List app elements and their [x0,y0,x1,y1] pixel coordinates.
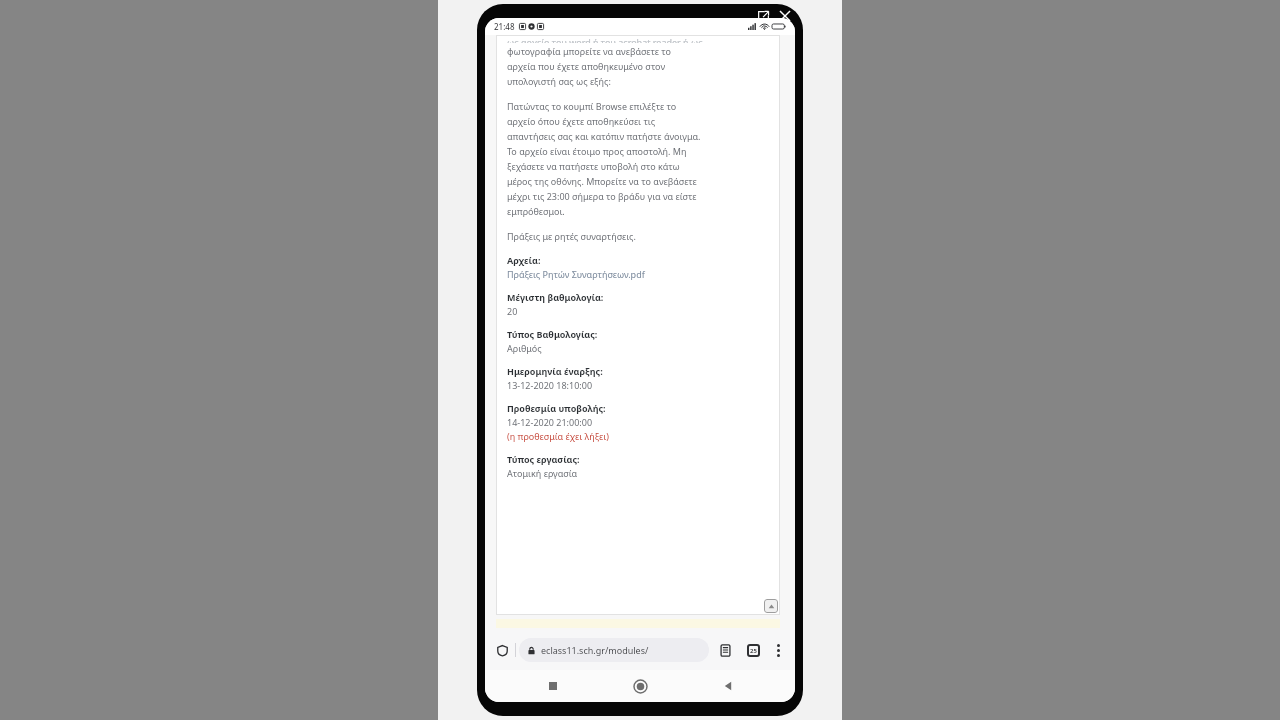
staticText: Πράξεις με ρητές συναρτήσεις. [507,230,636,242]
button[interactable]: Tabs [741,638,765,662]
button[interactable]: Πράξεις Ρητών Συναρτήσεων.pdf [507,268,645,280]
staticText: Ημερομηνία έναρξης: [507,365,603,377]
staticText: eclass11.sch.gr/modules/ [541,644,649,656]
button[interactable]: Recents [533,670,573,702]
button[interactable]: Home [620,670,660,702]
button[interactable]: Back [708,670,748,702]
staticText: Προθεσμία υποβολής: [507,402,606,414]
staticText: φωτογραφία μπορείτε να ανεβάσετε το αρχε… [507,45,671,87]
staticText: Τύπος εργασίας: [507,453,580,465]
staticText: Ατομική εργασία [507,467,578,479]
button[interactable]: Close [775,6,795,26]
button[interactable]: eclass11.sch.gr/modules/ [519,638,709,662]
staticText: ως αρχείο του word ή του acrobat reader … [507,36,703,43]
staticText: 21:48 [494,21,515,32]
button[interactable]: Open in browser [753,6,773,26]
button[interactable]: Privacy shield [491,639,513,661]
staticText: 13-12-2020 18:10:00 [507,379,593,391]
button[interactable]: Reader mode [713,638,737,662]
staticText: Πράξεις Ρητών Συναρτήσεων.pdf [507,268,645,280]
staticText: Πατώντας το κουμπί Browse επιλέξτε το αρ… [507,100,701,217]
button[interactable]: More options [767,639,789,661]
staticText: (η προθεσμία έχει λήξει) [507,430,609,442]
button[interactable]: Scroll to top [764,599,778,613]
staticText: Τύπος Βαθμολογίας: [507,328,598,340]
staticText: Αριθμός [507,342,542,354]
staticText: Μέγιστη βαθμολογία: [507,291,604,303]
staticText: 20 [507,305,518,317]
staticText: 14-12-2020 21:00:00 [507,416,593,428]
staticText: Αρχεία: [507,254,541,266]
staticText: 25 [750,647,757,655]
